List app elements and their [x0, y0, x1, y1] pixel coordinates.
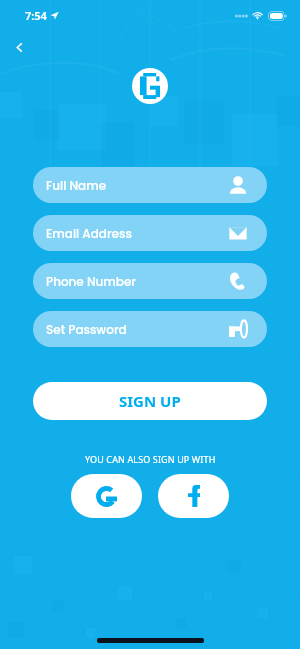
button[interactable]: SIGN UP [33, 382, 267, 420]
staticText: YOU CAN ALSO SIGN UP WITH [85, 453, 216, 465]
button[interactable]: Sign up with Google [71, 474, 142, 518]
staticText: Full Name [46, 177, 107, 194]
staticText: Phone Number [46, 273, 136, 290]
button[interactable]: Email Address [33, 215, 267, 251]
button[interactable]: Back [6, 34, 33, 61]
button[interactable]: Full Name [33, 167, 267, 203]
staticText: SIGN UP [119, 391, 181, 411]
button[interactable]: Sign up with Facebook [158, 474, 229, 518]
staticText: 7:54 [25, 8, 47, 23]
button[interactable]: Phone Number [33, 263, 267, 299]
button[interactable]: Set Password [33, 311, 267, 347]
staticText: Email Address [46, 225, 132, 242]
staticText: Set Password [46, 321, 127, 338]
